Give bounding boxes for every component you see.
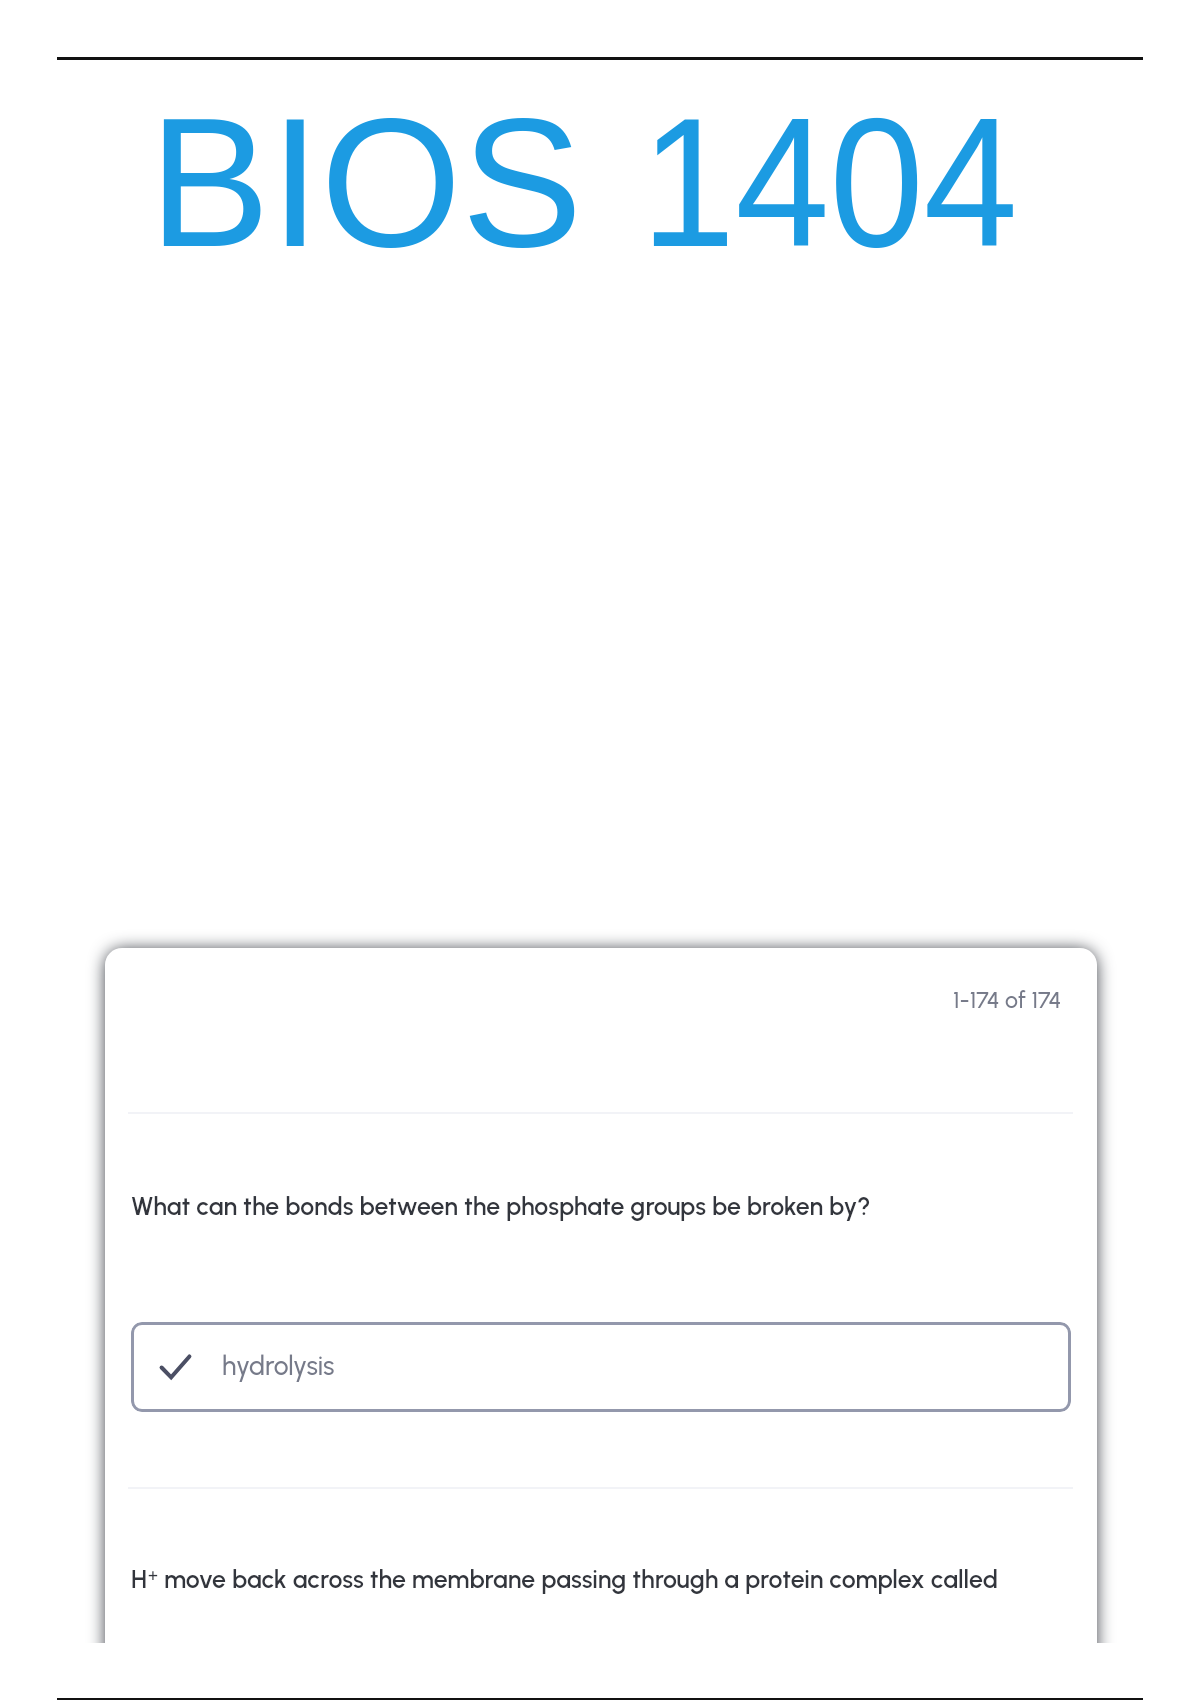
staticText: 1404	[641, 79, 1018, 285]
staticText: 1-174 of 174	[953, 986, 1062, 1014]
button[interactable]: What can the bonds between the phosphate…	[131, 1185, 1071, 1227]
staticText: BIOS	[149, 79, 583, 285]
staticText: move back across the membrane passing th…	[158, 1564, 998, 1594]
staticText: What can the bonds between the phosphate…	[131, 1191, 871, 1221]
staticText: H	[131, 1564, 148, 1594]
button[interactable]: Selected	[131, 1322, 1071, 1412]
staticText: +	[148, 1565, 158, 1585]
other: Selected	[161, 1353, 190, 1382]
button[interactable]: 1-174 of 174	[948, 980, 1066, 1020]
button[interactable]: H	[131, 1564, 1071, 1594]
staticText: hydrolysis	[222, 1350, 335, 1382]
